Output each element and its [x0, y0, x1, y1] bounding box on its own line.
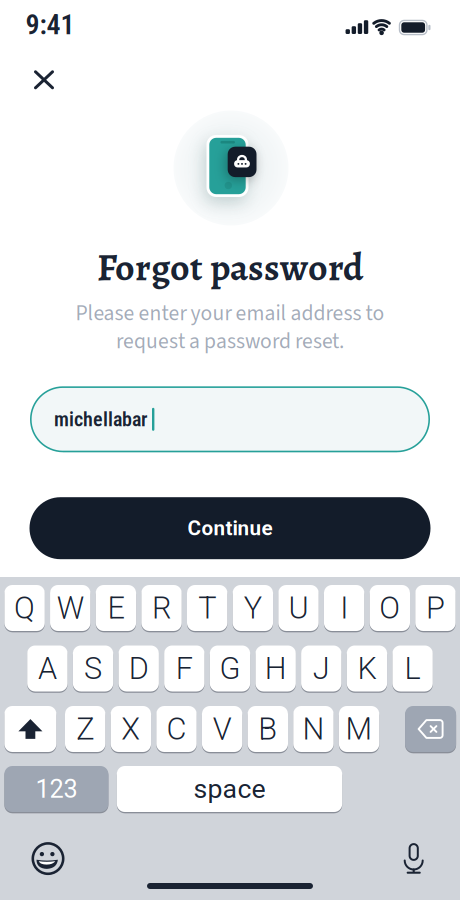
staticText: W [57, 590, 84, 626]
staticText: space [193, 773, 265, 805]
staticText: H [265, 650, 287, 686]
staticText: F [176, 650, 193, 686]
button[interactable]: D [118, 645, 159, 692]
staticText: R [152, 590, 171, 626]
staticText: M [346, 711, 373, 747]
button[interactable]: O [370, 584, 410, 632]
button[interactable]: N [293, 705, 334, 753]
staticText: J [313, 650, 330, 686]
button[interactable]: J [301, 645, 341, 692]
button[interactable]: Delete [405, 705, 456, 753]
button[interactable]: I [324, 584, 364, 632]
button[interactable]: Dictation [404, 843, 423, 874]
button[interactable]: K [347, 645, 387, 692]
staticText: G [219, 650, 240, 686]
staticText: Please enter your email address to [75, 298, 384, 329]
staticText: I [340, 590, 348, 626]
staticText: B [258, 711, 277, 747]
button[interactable]: Z [65, 705, 105, 753]
staticText: request a password reset. [116, 326, 344, 357]
button[interactable]: Q [4, 584, 45, 632]
staticText: 123 [35, 774, 77, 804]
staticText: U [288, 590, 308, 626]
button[interactable]: H [255, 645, 296, 692]
staticText: L [405, 650, 421, 686]
staticText: N [302, 711, 324, 747]
staticText: A [38, 650, 57, 686]
button[interactable]: G [210, 645, 250, 692]
button[interactable]: E [96, 584, 136, 632]
staticText: C [166, 711, 186, 747]
staticText: michellabar [54, 408, 147, 431]
staticText: Forgot password [97, 242, 363, 293]
button[interactable]: W [50, 584, 90, 632]
staticText: 9:41 [25, 8, 74, 41]
button[interactable]: T [187, 584, 227, 632]
button[interactable]: R [141, 584, 182, 632]
staticText: Z [76, 711, 94, 747]
button[interactable]: Close [27, 63, 61, 97]
button[interactable]: Continue [29, 497, 430, 559]
staticText: X [121, 711, 140, 747]
staticText: K [357, 650, 376, 686]
staticText: Q [14, 590, 35, 626]
button[interactable]: Email address [30, 386, 430, 452]
button[interactable]: L [392, 645, 433, 692]
button[interactable]: M [339, 705, 379, 753]
button[interactable]: Emoji [31, 842, 64, 875]
staticText: S [84, 650, 102, 686]
button[interactable]: V [202, 705, 242, 753]
button[interactable]: C [156, 705, 197, 753]
button[interactable]: A [27, 645, 68, 692]
staticText: E [107, 590, 124, 626]
button[interactable]: Shift [4, 705, 56, 753]
button[interactable]: 123 [4, 765, 108, 813]
button[interactable]: space [117, 765, 342, 813]
button[interactable]: F [164, 645, 205, 692]
staticText: V [213, 711, 232, 747]
staticText: D [129, 650, 149, 686]
staticText: Y [244, 590, 262, 626]
button[interactable]: U [278, 584, 319, 632]
button[interactable]: S [73, 645, 113, 692]
button[interactable]: B [248, 705, 288, 753]
button[interactable]: P [415, 584, 456, 632]
button[interactable]: Y [233, 584, 273, 632]
staticText: P [426, 590, 445, 626]
staticText: Continue [187, 516, 272, 540]
staticText: O [379, 590, 400, 626]
staticText: T [198, 590, 216, 626]
button[interactable]: X [111, 705, 151, 753]
